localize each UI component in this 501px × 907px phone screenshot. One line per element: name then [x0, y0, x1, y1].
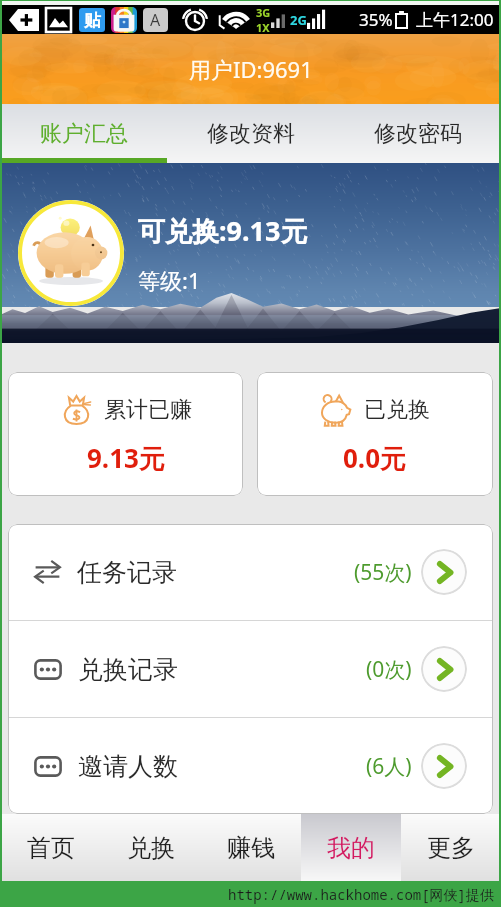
staticText: 用户ID:9691 — [189, 54, 313, 84]
staticText: 已兑换 — [364, 396, 430, 424]
staticText: 修改资料 — [207, 120, 295, 148]
staticText: 邀请人数 — [78, 751, 178, 782]
staticText: 首页 — [27, 833, 75, 863]
staticText: 35% — [359, 8, 393, 31]
button[interactable]: 兑换 — [101, 814, 201, 881]
staticText: 兑换 — [127, 833, 175, 863]
button[interactable]: 修改密码 — [334, 104, 501, 163]
staticText: 兑换记录 — [78, 654, 178, 685]
staticText: 1X — [256, 20, 270, 34]
staticText: (55次) — [354, 558, 412, 587]
staticText: 2G — [290, 11, 307, 29]
staticText: 上午12:00 — [416, 8, 494, 31]
staticText: 等级:1 — [138, 265, 201, 295]
staticText: 3G — [256, 5, 271, 20]
staticText: 贴 — [84, 10, 101, 31]
button[interactable]: 修改资料 — [167, 104, 334, 163]
button[interactable]: 任务记录 — [421, 549, 467, 595]
staticText: 赚钱 — [227, 833, 275, 863]
staticText: 9.13元 — [87, 440, 165, 476]
button[interactable]: 邀请人数 — [8, 718, 493, 814]
staticText: 0.0元 — [343, 440, 407, 476]
staticText: (6人) — [366, 752, 412, 781]
button[interactable]: 累计已赚 — [8, 372, 243, 496]
button[interactable]: 赚钱 — [201, 814, 301, 881]
staticText: 我的 — [327, 833, 375, 863]
button[interactable]: 首页 — [0, 814, 101, 881]
button[interactable]: 我的 — [301, 814, 401, 881]
staticText: (0次) — [366, 655, 412, 684]
staticText: 更多 — [427, 833, 475, 863]
staticText: 累计已赚 — [104, 396, 192, 424]
button[interactable]: 已兑换 — [257, 372, 493, 496]
staticText: 可兑换:9.13元 — [138, 212, 308, 249]
button[interactable]: 邀请人数 — [421, 743, 467, 789]
button[interactable]: 任务记录 — [8, 524, 493, 620]
button[interactable]: 兑换记录 — [8, 621, 493, 717]
button[interactable]: 兑换记录 — [421, 646, 467, 692]
button[interactable]: 更多 — [401, 814, 501, 881]
staticText: http://www.hackhome.com[网侠]提供 — [228, 885, 494, 904]
staticText: 任务记录 — [77, 557, 177, 588]
staticText: A — [150, 9, 161, 31]
button[interactable]: 账户汇总 — [0, 104, 167, 163]
staticText: 修改密码 — [374, 120, 462, 148]
staticText: 账户汇总 — [40, 120, 128, 148]
